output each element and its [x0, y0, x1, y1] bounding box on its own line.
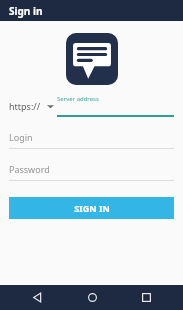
other: Select scheme [47, 104, 54, 109]
staticText: Sign in [9, 4, 43, 18]
button[interactable]: Password [9, 163, 174, 181]
button[interactable]: Back [20, 285, 54, 310]
button[interactable]: Recent apps [129, 285, 163, 310]
staticText: Login [9, 131, 33, 143]
button[interactable]: https:// [9, 96, 57, 116]
staticText: https:// [9, 100, 41, 112]
button[interactable]: Login [9, 131, 174, 149]
staticText: SIGN IN [74, 202, 110, 214]
button[interactable]: Server address [57, 95, 174, 117]
staticText: Server address [57, 95, 99, 103]
button[interactable]: Home [75, 285, 109, 310]
staticText: Password [9, 163, 50, 175]
button[interactable]: SIGN IN [9, 197, 174, 219]
